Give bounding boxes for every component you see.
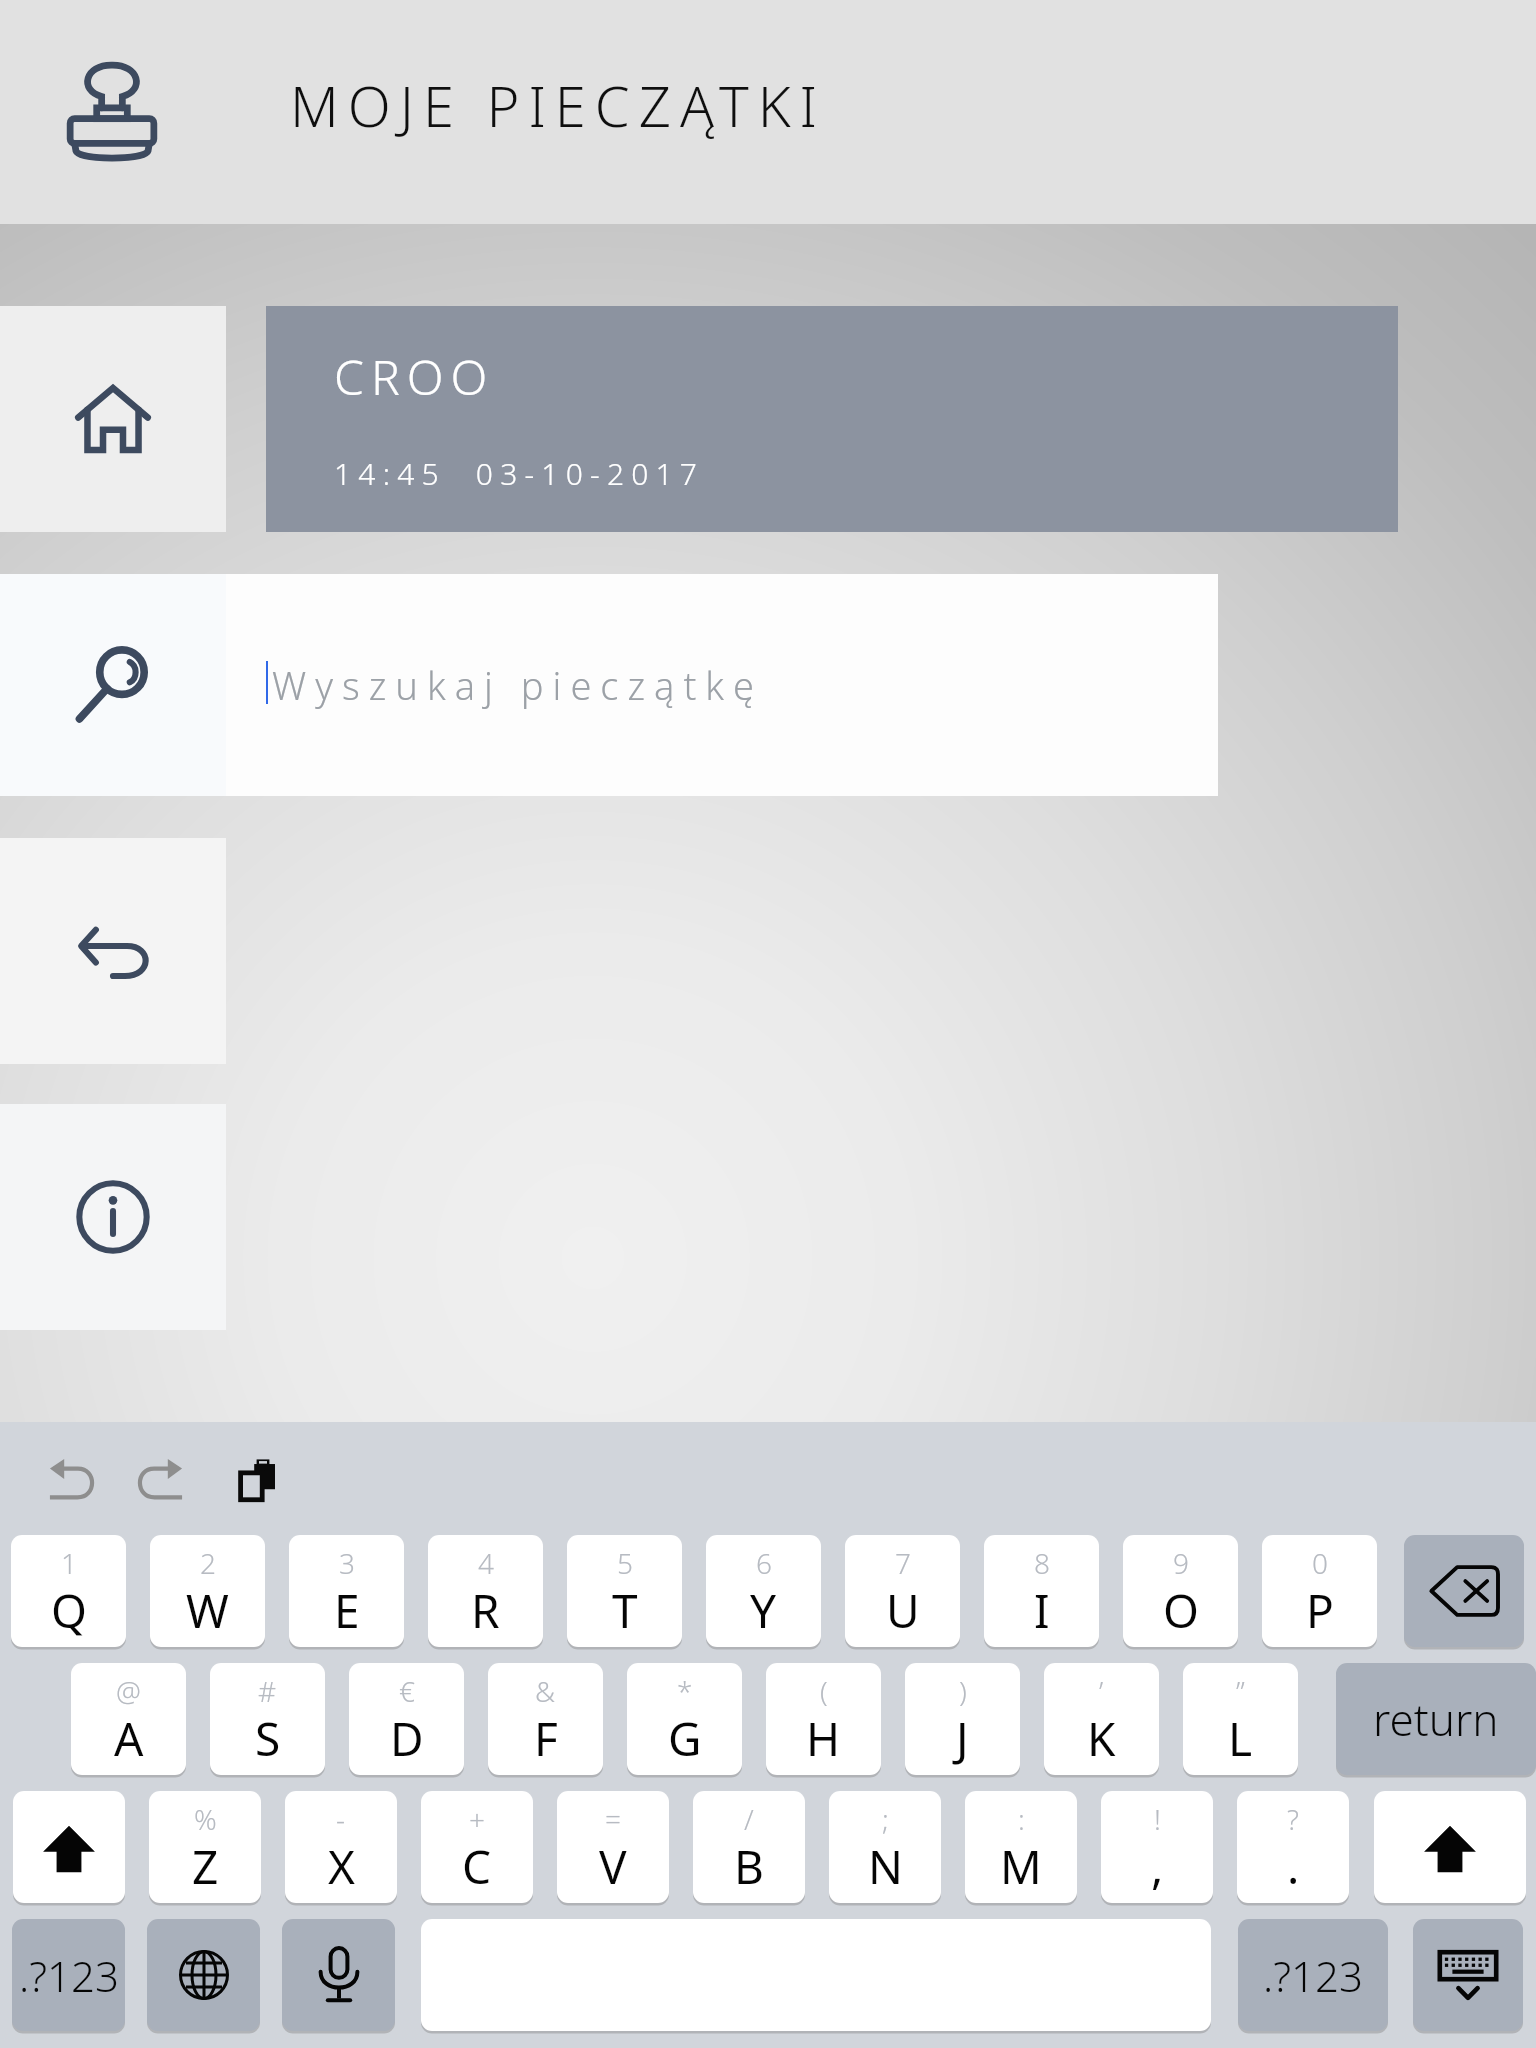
button[interactable]: 5: [567, 1535, 682, 1647]
staticText: -: [336, 1800, 346, 1838]
staticText: ’: [1099, 1672, 1104, 1710]
staticText: K: [1087, 1707, 1116, 1770]
staticText: Wyszukaj pieczątkę: [272, 659, 764, 711]
button[interactable]: /: [693, 1791, 805, 1903]
staticText: (: [820, 1672, 828, 1710]
staticText: V: [599, 1835, 627, 1898]
button[interactable]: Cofnij: [49, 1459, 95, 1499]
button[interactable]: Szukaj: [0, 574, 226, 796]
staticText: return: [1373, 1689, 1499, 1749]
staticText: .?123: [19, 1947, 119, 2004]
staticText: 1: [61, 1544, 77, 1582]
staticText: 2: [200, 1544, 216, 1582]
staticText: D: [390, 1707, 424, 1770]
button[interactable]: Wklej: [239, 1459, 279, 1501]
button[interactable]: Informacje: [0, 1104, 226, 1330]
button[interactable]: Shift: [1374, 1791, 1526, 1903]
staticText: *: [677, 1672, 693, 1710]
button[interactable]: Ponów: [137, 1459, 183, 1499]
staticText: M: [1000, 1835, 1042, 1898]
staticText: A: [114, 1707, 144, 1770]
button[interactable]: %: [149, 1791, 261, 1903]
staticText: Y: [750, 1579, 777, 1642]
staticText: C: [462, 1835, 492, 1898]
staticText: =: [605, 1800, 621, 1838]
button[interactable]: (: [766, 1663, 881, 1775]
staticText: Z: [192, 1835, 219, 1898]
button[interactable]: ?: [1237, 1791, 1349, 1903]
staticText: 9: [1173, 1544, 1189, 1582]
staticText: N: [868, 1835, 903, 1898]
staticText: 8: [1034, 1544, 1050, 1582]
staticText: .: [1287, 1835, 1300, 1898]
button[interactable]: 1: [11, 1535, 126, 1647]
button[interactable]: Return: [1336, 1663, 1536, 1775]
button[interactable]: Liczby: [12, 1919, 125, 2031]
button[interactable]: 7: [845, 1535, 960, 1647]
button[interactable]: -: [285, 1791, 397, 1903]
button[interactable]: Shift: [13, 1791, 125, 1903]
button[interactable]: Wyszukaj pieczątkę: [226, 574, 1218, 796]
button[interactable]: =: [557, 1791, 669, 1903]
staticText: :: [1018, 1800, 1025, 1838]
button[interactable]: &: [488, 1663, 603, 1775]
button[interactable]: 8: [984, 1535, 1099, 1647]
button[interactable]: 4: [428, 1535, 543, 1647]
staticText: 5: [617, 1544, 633, 1582]
staticText: ,: [1151, 1835, 1164, 1898]
staticText: /: [744, 1800, 754, 1838]
button[interactable]: ;: [829, 1791, 941, 1903]
staticText: 3: [339, 1544, 355, 1582]
button[interactable]: ’: [1044, 1663, 1159, 1775]
staticText: €: [399, 1672, 415, 1710]
staticText: %: [194, 1800, 217, 1838]
button[interactable]: €: [349, 1663, 464, 1775]
staticText: R: [471, 1579, 500, 1642]
button[interactable]: Dyktowanie: [282, 1919, 395, 2031]
staticText: I: [1034, 1579, 1050, 1642]
button[interactable]: Ukryj klawiaturę: [1413, 1919, 1523, 2031]
button[interactable]: !: [1101, 1791, 1213, 1903]
staticText: U: [886, 1579, 920, 1642]
button[interactable]: :: [965, 1791, 1077, 1903]
button[interactable]: Cofnij: [0, 838, 226, 1064]
staticText: !: [1154, 1800, 1161, 1838]
button[interactable]: +: [421, 1791, 533, 1903]
button[interactable]: Moje pieczatki: [52, 52, 172, 172]
button[interactable]: @: [71, 1663, 186, 1775]
staticText: MOJE PIECZĄTKI: [290, 67, 827, 143]
staticText: @: [116, 1672, 141, 1710]
button[interactable]: *: [627, 1663, 742, 1775]
button[interactable]: Język: [147, 1919, 260, 2031]
staticText: 6: [756, 1544, 772, 1582]
staticText: 14:45 03-10-2017: [334, 453, 705, 494]
staticText: &: [535, 1672, 556, 1710]
staticText: P: [1306, 1579, 1334, 1642]
staticText: ;: [882, 1800, 889, 1838]
staticText: W: [186, 1579, 229, 1642]
button[interactable]: Backspace: [1404, 1535, 1524, 1647]
button[interactable]: 9: [1123, 1535, 1238, 1647]
button[interactable]: Strona główna: [0, 306, 226, 532]
button[interactable]: ): [905, 1663, 1020, 1775]
staticText: ): [959, 1672, 967, 1710]
button[interactable]: 0: [1262, 1535, 1377, 1647]
staticText: O: [1163, 1579, 1199, 1642]
button[interactable]: 2: [150, 1535, 265, 1647]
staticText: B: [734, 1835, 764, 1898]
staticText: T: [612, 1579, 638, 1642]
button[interactable]: #: [210, 1663, 325, 1775]
button[interactable]: 3: [289, 1535, 404, 1647]
staticText: X: [328, 1835, 355, 1898]
staticText: 0: [1312, 1544, 1328, 1582]
staticText: ?: [1287, 1800, 1299, 1838]
button[interactable]: CROO: [266, 306, 1398, 532]
staticText: H: [806, 1707, 841, 1770]
button[interactable]: Liczby: [1238, 1919, 1388, 2031]
staticText: .?123: [1263, 1947, 1363, 2004]
staticText: L: [1228, 1707, 1253, 1770]
staticText: +: [469, 1800, 485, 1838]
button[interactable]: ”: [1183, 1663, 1298, 1775]
button[interactable]: 6: [706, 1535, 821, 1647]
